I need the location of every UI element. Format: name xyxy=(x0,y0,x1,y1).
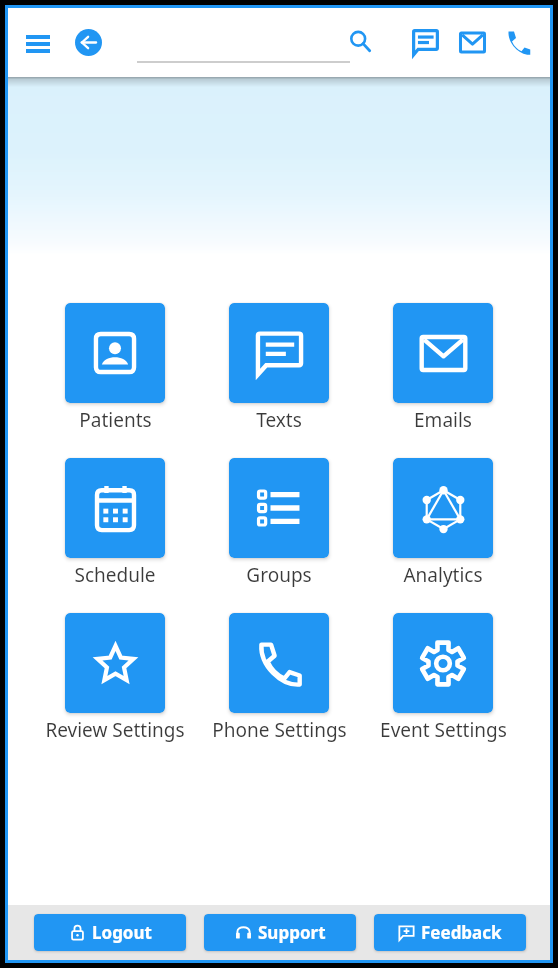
staticText: Patients xyxy=(79,407,152,433)
button[interactable]: Event Settings xyxy=(370,613,516,743)
button[interactable]: Texts xyxy=(206,303,352,433)
staticText: Texts xyxy=(256,407,302,433)
button[interactable]: Emails xyxy=(370,303,516,433)
button[interactable]: Emails xyxy=(455,26,489,58)
staticText: Emails xyxy=(414,407,472,433)
staticText: Logout xyxy=(92,921,152,944)
staticText: Review Settings xyxy=(45,717,185,743)
staticText: Schedule xyxy=(74,562,156,588)
button[interactable]: Analytics xyxy=(370,458,516,588)
button[interactable]: Call xyxy=(502,26,534,58)
staticText: Phone Settings xyxy=(212,717,347,743)
button[interactable]: Menu xyxy=(15,23,61,63)
button[interactable]: Groups xyxy=(206,458,352,588)
button[interactable]: Patients xyxy=(42,303,188,433)
staticText: Event Settings xyxy=(380,717,507,743)
button[interactable]: Search xyxy=(344,25,376,57)
button[interactable]: Phone Settings xyxy=(206,613,352,743)
button[interactable]: Logout xyxy=(34,914,186,951)
staticText: Analytics xyxy=(403,562,483,588)
button[interactable]: Support xyxy=(204,914,356,951)
button[interactable]: Feedback xyxy=(374,914,526,951)
button[interactable]: Back xyxy=(72,26,104,58)
button[interactable]: Schedule xyxy=(42,458,188,588)
staticText: Groups xyxy=(246,562,312,588)
button[interactable]: Texts xyxy=(408,26,443,58)
staticText: Feedback xyxy=(421,921,502,944)
staticText: Support xyxy=(258,921,326,944)
button[interactable]: Review Settings xyxy=(42,613,188,743)
